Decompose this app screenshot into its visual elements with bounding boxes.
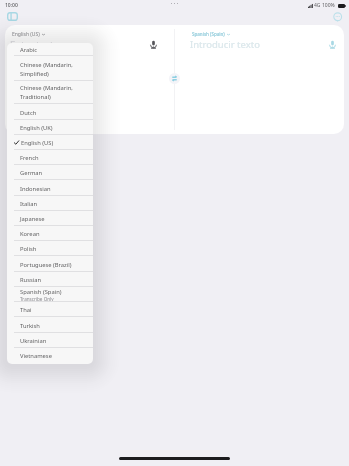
button[interactable]: Spanish (Spain) (7, 287, 93, 302)
button[interactable]: Italian (7, 196, 93, 211)
button[interactable]: Vietnamese (7, 348, 93, 364)
staticText: Indonesian (20, 185, 51, 193)
staticText: Chinese (Mandarin, Simplified) (20, 61, 73, 77)
staticText: English (US) (21, 139, 54, 147)
staticText: English (UK) (20, 124, 53, 132)
staticText: Turkish (20, 322, 40, 330)
button[interactable]: Swap languages (169, 73, 180, 84)
staticText: Vietnamese (20, 352, 52, 360)
button[interactable]: English (US) (12, 31, 45, 38)
button[interactable]: Thai (7, 302, 93, 317)
staticText: Arabic (20, 46, 38, 54)
button[interactable]: French (7, 150, 93, 165)
button[interactable]: Polish (7, 241, 93, 256)
button[interactable]: Ukrainian (7, 333, 93, 348)
button[interactable]: Chinese (Mandarin, Simplified) (7, 56, 93, 81)
button[interactable]: Portuguese (Brazil) (7, 257, 93, 272)
staticText: French (20, 154, 39, 162)
staticText: Russian (20, 276, 42, 284)
staticText: 4G (314, 2, 321, 9)
staticText: Enter text (10, 38, 54, 51)
staticText: 100% (322, 2, 335, 9)
button[interactable]: Japanese (7, 211, 93, 226)
staticText: 10:00 (5, 2, 18, 9)
staticText: Ukrainian (20, 337, 47, 345)
button[interactable]: Arabic (7, 43, 93, 56)
button[interactable]: Spanish (Spain) (192, 31, 230, 37)
staticText: Chinese (Mandarin, Traditional) (20, 84, 73, 100)
staticText: Polish (20, 245, 37, 253)
button[interactable]: Korean (7, 226, 93, 241)
staticText: English (US) (12, 31, 40, 38)
button[interactable]: German (7, 165, 93, 180)
staticText: Thai (20, 306, 32, 314)
button[interactable]: Russian (7, 272, 93, 287)
button[interactable]: Conversation mode (331, 10, 344, 23)
staticText: Dutch (20, 109, 37, 117)
button[interactable]: Speak in English (149, 40, 158, 49)
staticText: Spanish (Spain) (192, 31, 225, 37)
staticText: Italian (20, 200, 38, 208)
button[interactable]: Dutch (7, 105, 93, 120)
staticText: Introducir texto (190, 38, 260, 51)
button[interactable]: Turkish (7, 318, 93, 333)
staticText: Portuguese (Brazil) (20, 261, 72, 269)
staticText: Japanese (20, 215, 45, 223)
button[interactable]: Toggle sidebar (7, 12, 18, 21)
staticText: Korean (20, 230, 40, 238)
button[interactable]: English (UK) (7, 120, 93, 135)
button[interactable]: English (US) (7, 135, 93, 150)
staticText: German (20, 169, 43, 177)
staticText: Transcribe Only (20, 296, 54, 302)
button[interactable]: Chinese (Mandarin, Traditional) (7, 80, 93, 104)
button[interactable]: Indonesian (7, 181, 93, 196)
staticText: Spanish (Spain) (20, 288, 62, 296)
button[interactable]: Speak in Spanish (328, 40, 337, 49)
